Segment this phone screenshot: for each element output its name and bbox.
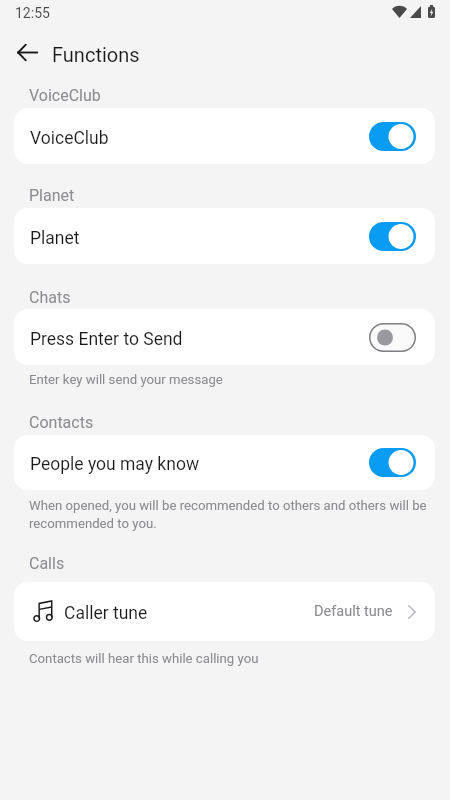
staticText: 12:55 — [15, 5, 50, 21]
button[interactable]: VoiceClub — [14, 108, 435, 164]
staticText: Caller tune — [64, 603, 314, 624]
staticText: Press Enter to Send — [30, 329, 369, 350]
staticText: Calls — [29, 554, 65, 573]
staticText: Chats — [29, 288, 71, 307]
button[interactable]: Press Enter to Send — [14, 309, 435, 365]
staticText: Planet — [29, 186, 75, 205]
button[interactable]: Planet — [14, 208, 435, 264]
staticText: VoiceClub — [30, 128, 369, 149]
staticText: Functions — [52, 43, 140, 66]
staticText: Planet — [30, 228, 369, 249]
button[interactable]: People you may know — [14, 435, 435, 490]
staticText: When opened, you will be recommended to … — [29, 498, 430, 531]
button[interactable]: Caller tune — [14, 582, 435, 641]
staticText: Contacts — [29, 413, 94, 432]
staticText: VoiceClub — [29, 86, 101, 105]
staticText: Default tune — [314, 603, 393, 620]
button[interactable]: Back — [6, 37, 48, 67]
staticText: Contacts will hear this while calling yo… — [29, 651, 259, 666]
staticText: People you may know — [30, 454, 369, 475]
staticText: Enter key will send your message — [29, 372, 223, 387]
